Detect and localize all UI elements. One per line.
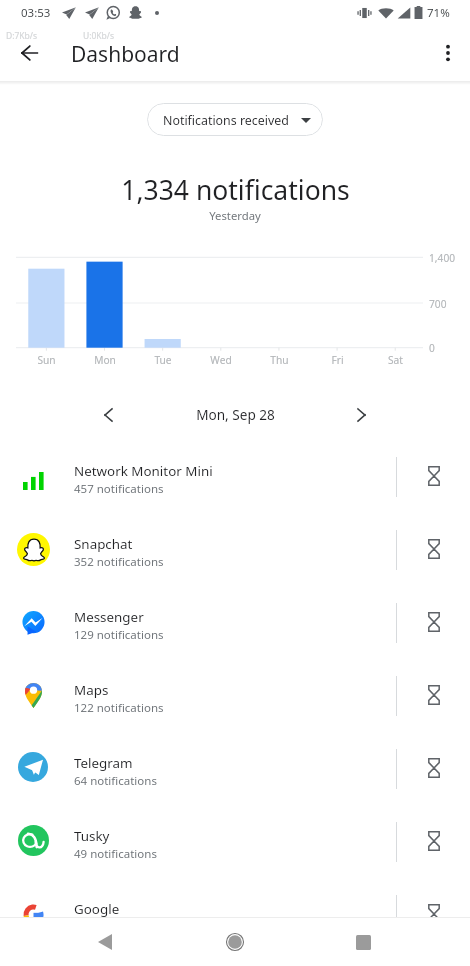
button[interactable]: Previous day (90, 397, 126, 433)
button[interactable]: Messenger (0, 586, 470, 659)
staticText: Messenger (74, 608, 144, 626)
staticText: Sat (388, 353, 403, 367)
button[interactable]: Back (81, 918, 129, 966)
button[interactable]: Tusky (0, 805, 470, 878)
staticText: Telegram (74, 754, 133, 772)
button[interactable]: Snapchat (0, 513, 470, 586)
staticText: 0 (429, 341, 435, 355)
staticText: Notifications received (163, 112, 289, 129)
staticText: Maps (74, 681, 109, 699)
staticText: 457 notifications (74, 481, 164, 497)
staticText: 352 notifications (74, 554, 164, 570)
staticText: Tue (154, 353, 172, 367)
button[interactable]: Google (0, 878, 470, 917)
staticText: 122 notifications (74, 700, 164, 716)
button[interactable]: Notifications received (147, 103, 323, 136)
staticText: Wed (210, 353, 232, 367)
staticText: Yesterday (209, 208, 261, 223)
button[interactable]: Next day (343, 397, 379, 433)
button[interactable]: Telegram (0, 732, 470, 805)
button[interactable]: Recent apps (339, 918, 387, 966)
button[interactable]: App timer for Network Monitor Mini (414, 456, 454, 496)
staticText: 129 notifications (74, 627, 164, 643)
staticText: Snapchat (74, 535, 133, 553)
staticText: 49 notifications (74, 846, 157, 862)
button[interactable]: App timer for Google (414, 894, 454, 917)
staticText: Google (74, 900, 120, 917)
staticText: 64 notifications (74, 773, 157, 789)
staticText: Fri (331, 353, 344, 367)
button[interactable]: Network Monitor Mini (0, 440, 470, 513)
staticText: Network Monitor Mini (74, 462, 213, 480)
staticText: 1,334 notifications (121, 172, 350, 208)
staticText: Tusky (74, 827, 110, 845)
button[interactable]: Navigate up (11, 35, 47, 71)
button[interactable]: App timer for Maps (414, 675, 454, 715)
button[interactable]: Home (211, 918, 259, 966)
button[interactable]: Maps (0, 659, 470, 732)
button[interactable]: App timer for Snapchat (414, 529, 454, 569)
button[interactable]: App timer for Tusky (414, 821, 454, 861)
staticText: Dashboard (71, 40, 180, 69)
staticText: Thu (270, 353, 289, 367)
button[interactable]: App timer for Telegram (414, 748, 454, 788)
staticText: Mon, Sep 28 (196, 405, 275, 424)
button[interactable]: More options (430, 35, 466, 71)
staticText: 71% (427, 5, 450, 21)
staticText: 03:53 (21, 5, 51, 21)
staticText: U:0Kb/s (83, 30, 115, 42)
staticText: 700 (429, 297, 447, 311)
staticText: D:7Kb/s (6, 30, 38, 42)
staticText: Sun (37, 353, 56, 367)
staticText: 1,400 (429, 251, 456, 265)
staticText: Mon (94, 353, 116, 367)
button[interactable]: App timer for Messenger (414, 602, 454, 642)
